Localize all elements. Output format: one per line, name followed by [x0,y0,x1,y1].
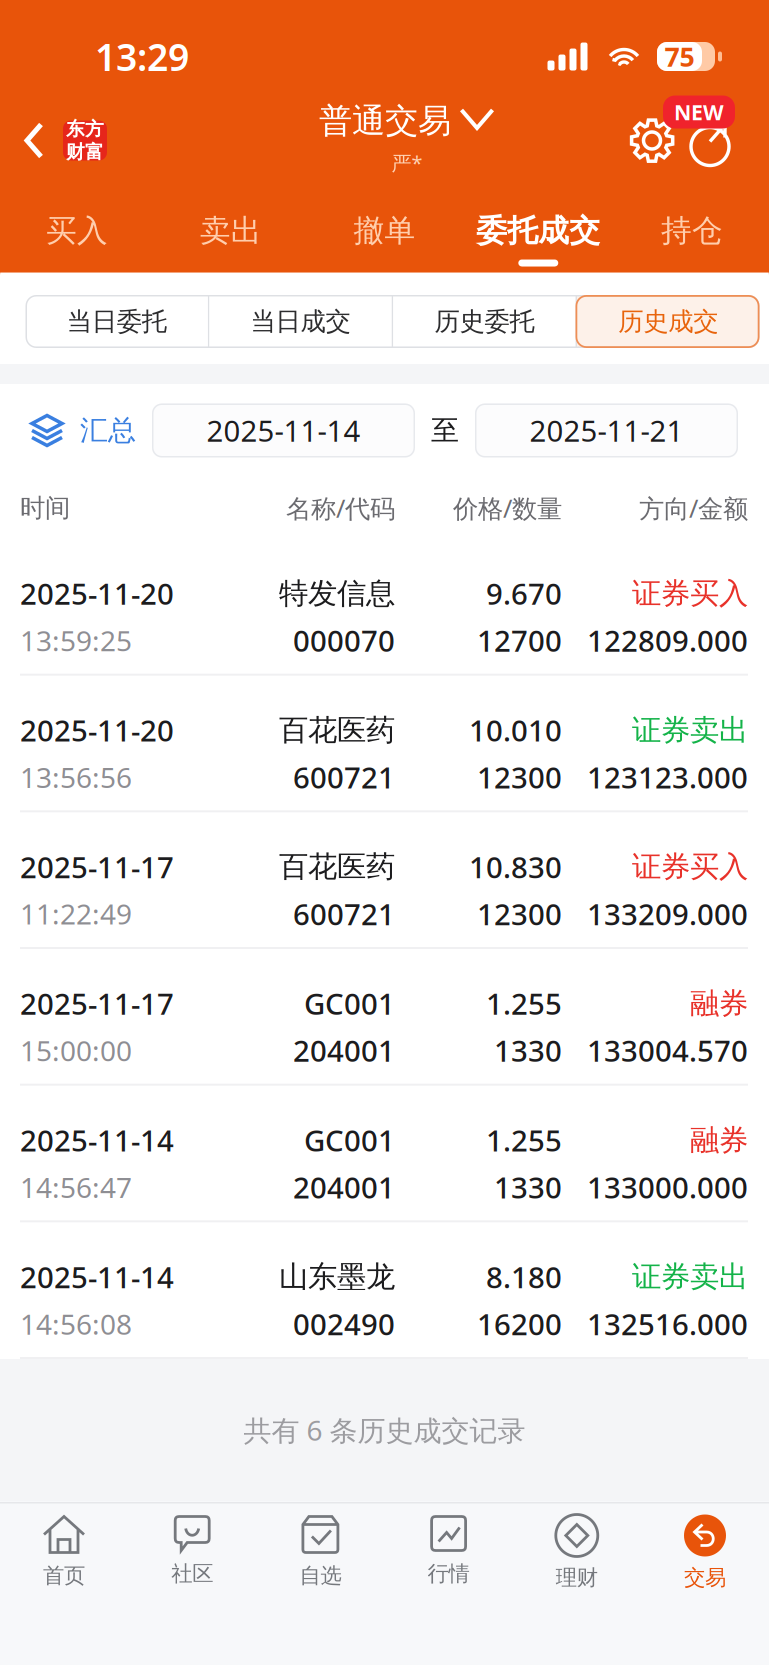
button[interactable]: 2025-11-17 [0,812,769,949]
staticText: 东方 [66,118,104,140]
button[interactable]: 2025-11-14 [0,1222,769,1359]
staticText: 历史成交 [618,306,718,337]
staticText: 当日成交 [251,306,351,337]
staticText: NEW [674,98,724,126]
button[interactable]: 汇总 [0,384,136,477]
staticText: 时间 [20,492,70,523]
staticText: 方向/金额 [639,491,748,525]
staticText: 1.255 [486,1121,562,1160]
staticText: 11:22:49 [20,895,132,932]
button[interactable]: 买入 [0,188,154,272]
staticText: 12700 [477,621,562,660]
button[interactable]: 2025-11-14 [152,403,415,457]
button[interactable]: 2025-11-21 [475,403,738,457]
staticText: 2025-11-14 [20,1121,174,1160]
staticText: 123123.000 [587,758,748,797]
staticText: 2025-11-17 [20,984,174,1023]
staticText: 撤单 [353,212,415,249]
button[interactable]: 理财 [513,1503,641,1665]
staticText: GC001 [304,1121,395,1160]
staticText: 证券买入 [632,575,748,611]
staticText: 财富 [66,140,104,163]
staticText: 2025-11-21 [529,411,683,450]
staticText: 委托成交 [476,212,600,249]
staticText: 1330 [494,1168,562,1207]
staticText: 百花医药 [279,712,395,748]
staticText: 至 [431,413,459,448]
staticText: 13:29 [95,32,189,81]
staticText: 2025-11-17 [20,847,174,886]
staticText: 持仓 [661,212,723,249]
button[interactable]: 持仓 [615,188,769,272]
staticText: 10.010 [469,711,562,750]
button[interactable]: 2025-11-14 [0,1086,769,1222]
staticText: 汇总 [80,413,136,448]
button[interactable]: 首页 [0,1503,128,1665]
staticText: 75 [664,39,694,74]
staticText: 002490 [293,1304,395,1343]
button[interactable]: 历史委托 [393,295,575,348]
button[interactable]: 社区 [128,1503,256,1665]
staticText: 14:56:47 [20,1168,132,1206]
staticText: 百花医药 [279,849,395,885]
staticText: 社区 [171,1560,213,1587]
staticText: 9.670 [486,574,562,613]
staticText: 133000.000 [587,1168,748,1207]
staticText: 133209.000 [587,894,748,933]
staticText: 1330 [494,1031,562,1070]
button[interactable]: 卖出 [154,188,308,272]
button[interactable]: 行情 [384,1503,513,1665]
staticText: 2025-11-14 [206,411,360,450]
staticText: 2025-11-20 [20,711,174,750]
staticText: 2025-11-20 [20,574,174,613]
button[interactable]: 普通交易 [319,92,495,188]
button[interactable]: 当日委托 [26,295,208,348]
staticText: 2025-11-14 [20,1257,174,1296]
staticText: 14:56:08 [20,1305,132,1342]
staticText: 历史委托 [434,306,534,337]
button[interactable]: 历史成交 [577,295,759,348]
staticText: 8.180 [486,1257,562,1296]
staticText: 首页 [43,1562,85,1589]
staticText: 204001 [293,1031,395,1070]
button[interactable]: 东方 [0,92,117,188]
button[interactable]: 退出 [685,113,735,167]
button[interactable]: 交易 [641,1503,769,1665]
button[interactable]: 2025-11-20 [0,676,769,812]
button[interactable]: 自选 [256,1503,384,1665]
staticText: 证券买入 [632,849,748,885]
button[interactable]: 撤单 [308,188,461,272]
staticText: 000070 [293,621,395,660]
staticText: 卖出 [200,212,262,249]
staticText: 行情 [428,1560,470,1587]
staticText: 204001 [293,1168,395,1207]
staticText: 理财 [556,1564,598,1591]
staticText: 买入 [46,212,108,249]
staticText: 普通交易 [319,100,451,141]
staticText: 共有 6 条历史成交记录 [243,1411,525,1449]
staticText: 600721 [293,894,395,933]
staticText: 132516.000 [587,1304,748,1343]
staticText: 133004.570 [587,1031,748,1070]
button[interactable]: 设置 [629,117,675,163]
staticText: 10.830 [469,847,562,886]
staticText: 122809.000 [587,621,748,660]
staticText: 山东墨龙 [279,1259,395,1295]
staticText: 12300 [477,758,562,797]
staticText: 证券卖出 [632,1259,748,1295]
staticText: 融券 [690,985,748,1021]
button[interactable]: 2025-11-17 [0,949,769,1086]
button[interactable]: 2025-11-20 [0,539,769,676]
staticText: 严* [391,149,422,176]
staticText: GC001 [304,984,395,1023]
staticText: 13:56:56 [20,758,132,796]
button[interactable]: 委托成交 [461,188,615,272]
staticText: 价格/数量 [453,491,562,525]
button[interactable]: 当日成交 [209,295,392,348]
staticText: 当日委托 [67,306,167,337]
staticText: 1.255 [486,984,562,1023]
staticText: 16200 [477,1304,562,1343]
staticText: 名称/代码 [286,491,395,525]
staticText: 自选 [299,1562,341,1589]
staticText: 12300 [477,894,562,933]
